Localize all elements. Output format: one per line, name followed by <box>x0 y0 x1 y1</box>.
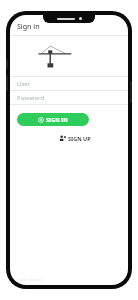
staticText: Password <box>17 94 45 102</box>
staticText: made with love <box>18 277 43 282</box>
button[interactable]: Sign up <box>56 133 94 144</box>
staticText: SIGN UP <box>68 135 91 142</box>
button[interactable]: User <box>10 77 128 90</box>
staticText: User <box>17 80 31 88</box>
button[interactable]: SIGN IN <box>17 113 89 126</box>
other: Sign up <box>59 135 66 142</box>
staticText: SIGN IN <box>46 116 68 123</box>
button[interactable]: Password <box>10 91 128 104</box>
staticText: Sign in <box>17 22 40 32</box>
